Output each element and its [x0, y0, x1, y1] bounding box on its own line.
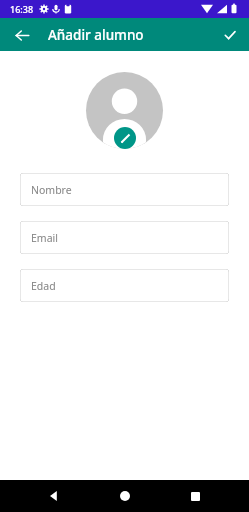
button[interactable]: Back: [8, 21, 36, 49]
button[interactable]: Email: [20, 221, 229, 254]
button[interactable]: Nombre: [20, 173, 229, 206]
staticText: Edad: [31, 279, 56, 293]
button[interactable]: Edit photo: [114, 127, 136, 149]
staticText: Añadir alumno: [48, 26, 144, 44]
button[interactable]: Recent apps: [179, 480, 211, 512]
staticText: 16:38: [10, 3, 34, 15]
staticText: Nombre: [31, 183, 72, 197]
button[interactable]: Edad: [20, 269, 229, 302]
button[interactable]: Back: [38, 480, 70, 512]
button[interactable]: Home: [109, 480, 141, 512]
staticText: Email: [31, 231, 58, 245]
button[interactable]: Save: [216, 21, 244, 49]
